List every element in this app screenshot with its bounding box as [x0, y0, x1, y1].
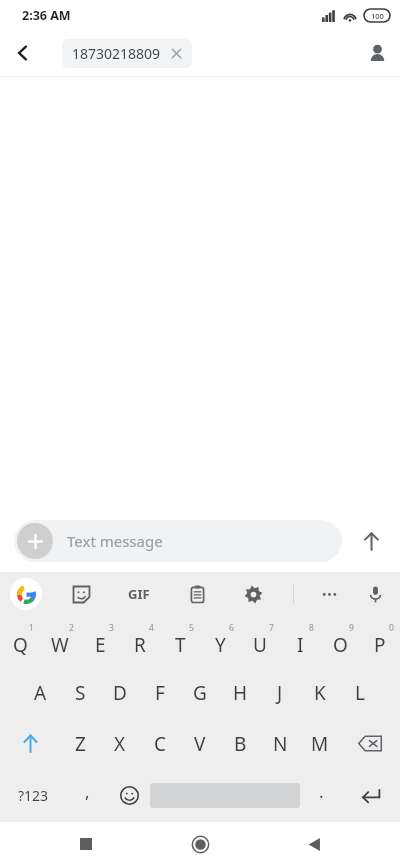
button[interactable]: Z: [60, 718, 100, 769]
button[interactable]: B: [220, 718, 260, 769]
staticText: 7: [269, 622, 274, 634]
button[interactable]: .: [300, 769, 342, 822]
button[interactable]: Google search: [10, 578, 42, 610]
button[interactable]: H: [220, 667, 260, 718]
button[interactable]: Shift: [0, 718, 60, 769]
staticText: ?123: [18, 786, 49, 805]
staticText: M: [311, 731, 329, 757]
button[interactable]: Backspace: [340, 718, 400, 769]
button[interactable]: Settings: [236, 577, 270, 611]
button[interactable]: J: [260, 667, 300, 718]
staticText: Y: [215, 632, 226, 658]
button[interactable]: Q: [0, 616, 40, 667]
staticText: R: [134, 632, 146, 658]
button[interactable]: Contact details: [354, 30, 400, 76]
staticText: N: [273, 731, 288, 757]
staticText: 18730218809: [72, 44, 161, 63]
button[interactable]: S: [60, 667, 100, 718]
staticText: X: [114, 731, 126, 757]
staticText: 9: [349, 622, 354, 634]
staticText: 8: [309, 622, 314, 634]
button[interactable]: O: [320, 616, 360, 667]
staticText: 5: [189, 622, 194, 634]
button[interactable]: X: [100, 718, 140, 769]
staticText: 2:36 AM: [22, 7, 71, 24]
button[interactable]: Recent apps: [64, 822, 108, 866]
staticText: .: [319, 780, 324, 803]
staticText: 4: [149, 622, 154, 634]
button[interactable]: P: [360, 616, 400, 667]
button[interactable]: W: [40, 616, 80, 667]
button[interactable]: GIF: [120, 575, 158, 613]
button[interactable]: K: [300, 667, 340, 718]
button[interactable]: 18730218809: [62, 39, 192, 68]
button[interactable]: I: [280, 616, 320, 667]
button[interactable]: D: [100, 667, 140, 718]
staticText: A: [34, 680, 47, 706]
button[interactable]: A: [20, 667, 60, 718]
button[interactable]: C: [140, 718, 180, 769]
button[interactable]: V: [180, 718, 220, 769]
staticText: C: [154, 731, 167, 757]
button[interactable]: Add attachment: [17, 523, 53, 559]
staticText: GIF: [128, 585, 150, 603]
button[interactable]: F: [140, 667, 180, 718]
staticText: U: [253, 632, 267, 658]
staticText: G: [193, 680, 207, 706]
button[interactable]: U: [240, 616, 280, 667]
staticText: Text message: [67, 531, 163, 551]
staticText: 1: [29, 622, 34, 634]
button[interactable]: Home: [178, 822, 222, 866]
button[interactable]: M: [300, 718, 340, 769]
staticText: T: [175, 632, 186, 658]
button[interactable]: More options: [312, 577, 346, 611]
button[interactable]: ,: [66, 769, 108, 822]
staticText: O: [333, 632, 348, 658]
button[interactable]: Send: [342, 512, 400, 570]
button[interactable]: Stickers: [64, 577, 98, 611]
button[interactable]: Voice input: [358, 577, 392, 611]
button[interactable]: Back: [0, 30, 46, 76]
button[interactable]: Emoji: [108, 769, 150, 822]
staticText: J: [277, 680, 283, 706]
staticText: 6: [229, 622, 234, 634]
staticText: ,: [85, 780, 90, 803]
staticText: D: [113, 680, 127, 706]
staticText: 0: [389, 622, 394, 634]
button[interactable]: E: [80, 616, 120, 667]
button[interactable]: Clipboard: [180, 577, 214, 611]
button[interactable]: ?123: [0, 769, 66, 822]
staticText: V: [194, 731, 206, 757]
button[interactable]: L: [340, 667, 380, 718]
staticText: P: [374, 632, 386, 658]
staticText: W: [51, 632, 69, 658]
staticText: 100: [371, 11, 384, 21]
staticText: E: [95, 632, 106, 658]
button[interactable]: Add attachment: [14, 520, 342, 562]
button[interactable]: Back: [292, 822, 336, 866]
button[interactable]: Enter: [342, 769, 400, 822]
staticText: I: [297, 632, 304, 658]
staticText: B: [234, 731, 247, 757]
staticText: 2: [69, 622, 74, 634]
staticText: S: [75, 680, 86, 706]
staticText: L: [355, 680, 365, 706]
staticText: F: [155, 680, 165, 706]
staticText: K: [314, 680, 326, 706]
staticText: H: [233, 680, 248, 706]
button[interactable]: R: [120, 616, 160, 667]
staticText: 3: [109, 622, 114, 634]
button[interactable]: N: [260, 718, 300, 769]
button[interactable]: Y: [200, 616, 240, 667]
staticText: Z: [75, 731, 86, 757]
button[interactable]: T: [160, 616, 200, 667]
button[interactable]: G: [180, 667, 220, 718]
staticText: Q: [13, 632, 28, 658]
